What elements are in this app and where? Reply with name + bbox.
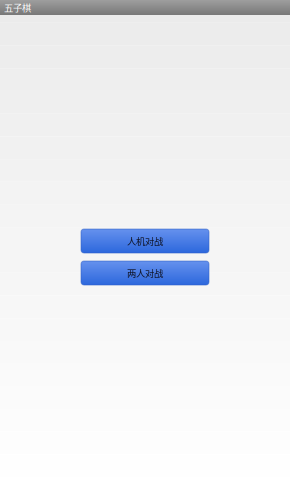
button[interactable]: 两人对战 (81, 261, 209, 285)
staticText: 五子棋 (4, 1, 31, 14)
staticText: 人机对战 (127, 234, 163, 248)
staticText: 两人对战 (127, 266, 163, 280)
button[interactable]: 人机对战 (81, 229, 209, 253)
